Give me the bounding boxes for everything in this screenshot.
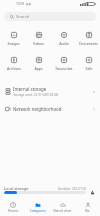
button[interactable]: Network neighborhood — [0, 101, 100, 116]
button[interactable]: Clean up storage — [88, 189, 96, 195]
staticText: Me — [85, 209, 90, 213]
button[interactable]: Shared drive — [50, 202, 75, 213]
staticText: Audio — [59, 41, 69, 46]
staticText: Recent — [8, 209, 18, 213]
staticText: Available: 104.17 GB — [58, 187, 86, 191]
button[interactable]: Me — [75, 202, 100, 213]
staticText: Search — [16, 14, 30, 20]
staticText: Local storage — [4, 186, 29, 191]
button[interactable]: Safe — [76, 57, 100, 71]
staticText: Documents — [79, 41, 98, 46]
staticText: Storage used: 23.97 GB/128 GB — [13, 93, 59, 97]
button[interactable]: Favourites — [51, 57, 76, 71]
staticText: 10:09 — [16, 2, 25, 6]
button[interactable]: Videos — [26, 32, 51, 46]
button[interactable]: Apps — [26, 57, 51, 71]
staticText: Shared drive — [53, 209, 72, 213]
button[interactable]: Categories — [25, 202, 50, 213]
staticText: Network neighborhood — [13, 106, 62, 112]
staticText: Archives — [7, 66, 21, 71]
button[interactable]: Internal storage — [0, 83, 100, 100]
staticText: Internal storage — [13, 86, 47, 92]
button[interactable]: Recent — [0, 202, 25, 213]
button[interactable]: Documents — [76, 32, 100, 46]
button[interactable]: Audio — [51, 32, 76, 46]
staticText: Images — [7, 41, 20, 46]
staticText: Apps — [34, 66, 43, 71]
button[interactable]: Archives — [1, 57, 26, 71]
staticText: Favourites — [55, 66, 73, 71]
button[interactable]: Search — [4, 12, 96, 21]
staticText: Videos — [33, 41, 44, 46]
staticText: Safe — [85, 66, 93, 71]
staticText: Categories — [30, 209, 46, 213]
button[interactable]: Images — [1, 32, 26, 46]
